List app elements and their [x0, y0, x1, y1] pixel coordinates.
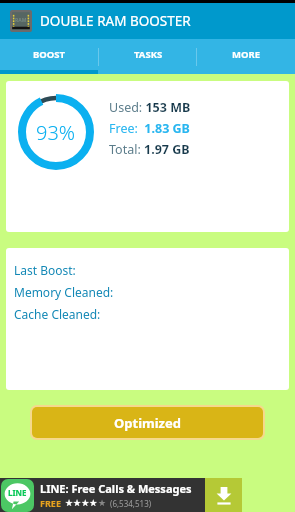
staticText: Used: 153 MB	[109, 99, 191, 116]
button[interactable]: LINE	[0, 478, 242, 512]
other: App icon	[10, 10, 32, 32]
staticText: LINE: Free Calls & Messages	[40, 481, 192, 496]
button[interactable]: Optimized	[32, 407, 263, 438]
staticText: Total: 1.97 GB	[109, 141, 190, 158]
button[interactable]: Install	[205, 478, 242, 512]
staticText: (6,534,513)	[110, 498, 152, 509]
staticText: FREE	[40, 497, 61, 509]
button[interactable]: MORE	[197, 39, 295, 74]
staticText: MORE	[232, 48, 261, 61]
staticText: LINE	[8, 487, 27, 498]
staticText: ★	[98, 498, 107, 508]
staticText: Optimized	[114, 414, 181, 432]
staticText: Cache Cleaned:	[14, 306, 101, 322]
staticText: Free: 1.83 GB	[109, 120, 190, 137]
staticText: Memory Cleaned:	[14, 284, 114, 300]
staticText: TASKS	[134, 48, 163, 61]
staticText: Last Boost:	[14, 262, 76, 278]
staticText: 93%	[36, 119, 76, 146]
button[interactable]: TASKS	[99, 39, 197, 74]
staticText: BOOST	[33, 48, 66, 61]
staticText: RAM	[15, 17, 27, 24]
button[interactable]: BOOST	[0, 39, 99, 74]
staticText: ★★★★	[65, 498, 98, 508]
staticText: DOUBLE RAM BOOSTER	[40, 12, 191, 30]
